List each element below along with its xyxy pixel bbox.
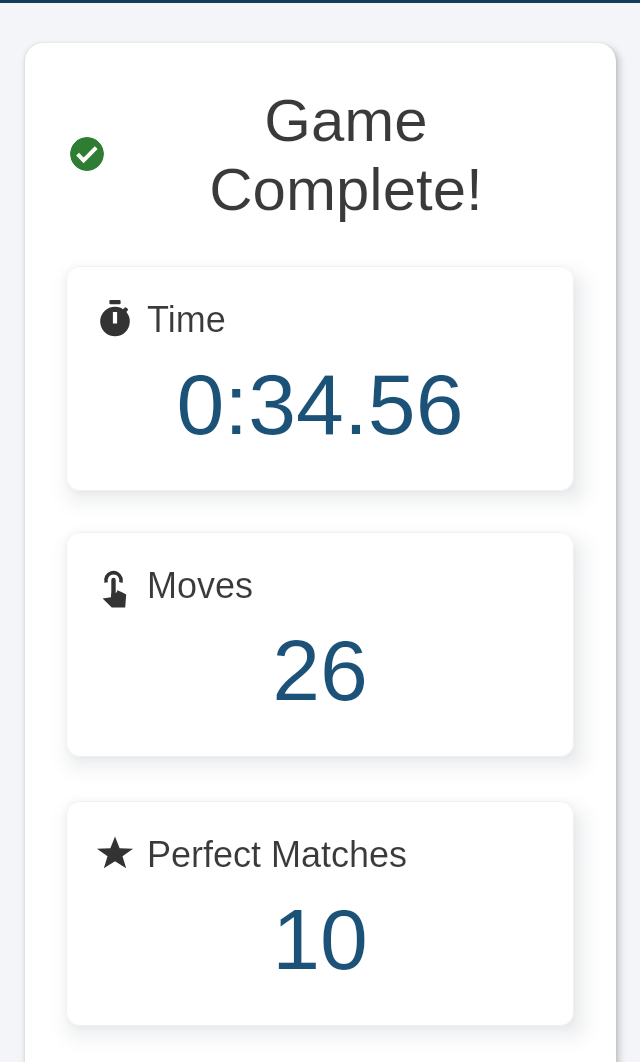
staticText: Perfect Matches: [147, 834, 408, 874]
button[interactable]: Perfect matches: [66, 801, 574, 1026]
staticText: Game Complete!: [196, 87, 496, 222]
staticText: Time: [147, 299, 226, 339]
staticText: 26: [66, 622, 574, 718]
button[interactable]: Time: [66, 266, 574, 491]
staticText: 10: [66, 891, 574, 987]
other: Moves: [102, 572, 128, 608]
button[interactable]: Moves: [66, 532, 574, 757]
other: Perfect matches: [96, 835, 134, 870]
staticText: 0:34.56: [66, 356, 574, 452]
other: Time: [100, 300, 130, 337]
staticText: Moves: [147, 565, 254, 605]
button[interactable]: Game completed: [70, 137, 104, 171]
